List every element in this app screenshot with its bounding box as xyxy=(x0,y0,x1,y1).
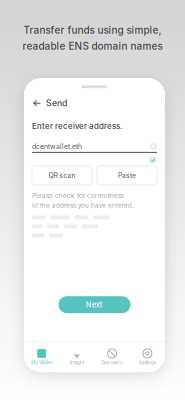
staticText: Insight xyxy=(70,360,84,365)
staticText: Enter receiver address. xyxy=(32,121,122,131)
staticText: Send xyxy=(46,98,67,108)
staticText: Please check for correctness xyxy=(32,192,124,200)
staticText: Paste xyxy=(118,171,136,180)
staticText: Transfer funds using simple, xyxy=(23,24,161,36)
button[interactable]: Next xyxy=(58,296,130,313)
button[interactable]: My Wallet xyxy=(24,342,59,372)
button[interactable]: Paste xyxy=(97,166,157,185)
button[interactable]: Insight xyxy=(59,342,94,372)
button[interactable]: Send xyxy=(24,94,165,112)
button[interactable]: Discovery xyxy=(94,342,130,372)
staticText: QR scan xyxy=(48,171,75,180)
staticText: Next xyxy=(86,300,103,309)
staticText: readable ENS domain names xyxy=(22,40,162,52)
staticText: Settings xyxy=(139,360,156,365)
staticText: Discovery xyxy=(101,360,123,365)
staticText: of the address you have entered. xyxy=(32,202,134,209)
button[interactable]: Settings xyxy=(130,342,165,372)
button[interactable]: QR scan xyxy=(32,166,92,185)
staticText: My Wallet xyxy=(31,360,52,365)
staticText: dcentwallet.eth xyxy=(32,142,82,151)
